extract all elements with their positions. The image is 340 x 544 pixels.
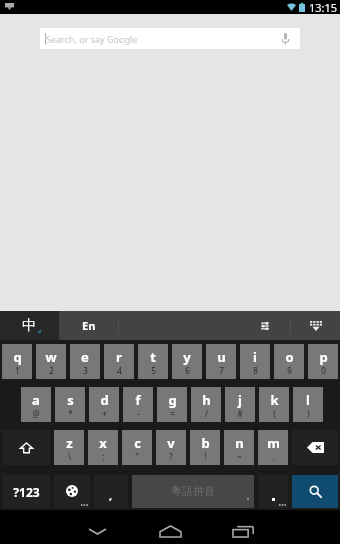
staticText: b bbox=[201, 434, 210, 452]
button[interactable]: Input settings bbox=[240, 311, 290, 340]
button[interactable]: ?123 bbox=[2, 475, 50, 508]
staticText: o bbox=[285, 348, 294, 366]
staticText: 8 bbox=[253, 365, 258, 376]
button[interactable]: r bbox=[104, 344, 134, 379]
button[interactable]: x bbox=[88, 430, 118, 465]
staticText: : bbox=[102, 451, 105, 462]
button[interactable]: q bbox=[2, 344, 32, 379]
staticText: i bbox=[253, 348, 257, 366]
other: Voice search bbox=[281, 32, 290, 45]
staticText: " bbox=[135, 451, 139, 462]
staticText: d bbox=[100, 391, 109, 409]
staticText: k bbox=[270, 391, 279, 409]
staticText: 6 bbox=[185, 365, 190, 376]
button[interactable]: t bbox=[138, 344, 168, 379]
button[interactable]: f bbox=[123, 387, 153, 422]
staticText: x bbox=[99, 434, 107, 452]
staticText: 粵語拼音 bbox=[171, 484, 215, 498]
button[interactable]: e bbox=[70, 344, 100, 379]
button[interactable]: p bbox=[308, 344, 338, 379]
staticText: f bbox=[135, 391, 141, 409]
button[interactable] bbox=[54, 475, 90, 508]
staticText: ! bbox=[204, 451, 207, 462]
staticText: v bbox=[167, 434, 175, 452]
staticText: l bbox=[306, 391, 310, 409]
staticText: , bbox=[109, 488, 113, 503]
staticText: 7 bbox=[219, 365, 224, 376]
button[interactable]: h bbox=[191, 387, 221, 422]
button[interactable] bbox=[2, 430, 50, 465]
staticText: # bbox=[237, 408, 243, 419]
staticText: y bbox=[183, 348, 191, 366]
staticText: ?123 bbox=[13, 484, 40, 500]
button[interactable]: k bbox=[259, 387, 289, 422]
staticText: - bbox=[137, 408, 140, 419]
button[interactable]: Recent apps bbox=[219, 523, 267, 539]
staticText: r bbox=[116, 348, 122, 366]
button[interactable]: Home bbox=[146, 523, 194, 539]
staticText: / bbox=[205, 408, 208, 419]
button[interactable]: m bbox=[258, 430, 288, 465]
staticText: n bbox=[235, 434, 244, 452]
staticText: = bbox=[170, 408, 175, 419]
staticText: 中 bbox=[22, 317, 36, 335]
button[interactable]: Search, or say Google bbox=[40, 28, 300, 49]
staticText: p bbox=[319, 348, 328, 366]
button[interactable]: d bbox=[89, 387, 119, 422]
staticText: c bbox=[134, 434, 141, 452]
staticText: 4 bbox=[117, 365, 122, 376]
button[interactable]: 粵語拼音 bbox=[132, 475, 254, 508]
button[interactable]: 中 bbox=[0, 311, 59, 340]
button[interactable]: Back bbox=[73, 523, 121, 539]
button[interactable]: l bbox=[293, 387, 323, 422]
staticText: e bbox=[81, 348, 89, 366]
button[interactable]: b bbox=[190, 430, 220, 465]
staticText: ) bbox=[307, 408, 310, 419]
button[interactable]: a bbox=[21, 387, 51, 422]
staticText: g bbox=[168, 391, 177, 409]
staticText: m bbox=[267, 434, 280, 452]
button[interactable]: n bbox=[224, 430, 254, 465]
button[interactable]: g bbox=[157, 387, 187, 422]
button[interactable]: i bbox=[240, 344, 270, 379]
staticText: 5 bbox=[151, 365, 156, 376]
staticText: ? bbox=[169, 451, 173, 462]
button[interactable]: , bbox=[94, 475, 128, 508]
staticText: 1 bbox=[15, 365, 20, 376]
button[interactable]: v bbox=[156, 430, 186, 465]
button[interactable]: c bbox=[122, 430, 152, 465]
button[interactable]: s bbox=[55, 387, 85, 422]
staticText: ~ bbox=[237, 451, 242, 462]
button[interactable] bbox=[258, 475, 288, 508]
staticText: . bbox=[272, 451, 275, 462]
button[interactable]: j bbox=[225, 387, 255, 422]
staticText: a bbox=[32, 391, 40, 409]
staticText: * bbox=[68, 408, 73, 419]
button[interactable]: Hide keyboard bbox=[291, 311, 340, 340]
staticText: j bbox=[238, 391, 242, 409]
button[interactable]: o bbox=[274, 344, 304, 379]
staticText: q bbox=[13, 348, 22, 366]
button[interactable]: u bbox=[206, 344, 236, 379]
staticText: 0 bbox=[321, 365, 326, 376]
staticText: + bbox=[102, 408, 107, 419]
staticText: ( bbox=[273, 408, 276, 419]
staticText: 9 bbox=[287, 365, 292, 376]
staticText: z bbox=[66, 434, 73, 452]
button[interactable]: w bbox=[36, 344, 66, 379]
staticText: En bbox=[82, 318, 96, 333]
button[interactable]: y bbox=[172, 344, 202, 379]
staticText: t bbox=[150, 348, 156, 366]
button[interactable]: En bbox=[59, 311, 118, 340]
staticText: \ bbox=[68, 451, 71, 462]
staticText: 3 bbox=[83, 365, 88, 376]
button[interactable]: z bbox=[54, 430, 84, 465]
staticText: s bbox=[67, 391, 74, 409]
staticText: u bbox=[217, 348, 226, 366]
staticText: Search, or say Google bbox=[46, 33, 138, 45]
staticText: @ bbox=[32, 408, 40, 419]
staticText: w bbox=[45, 348, 57, 366]
staticText: 13:15 bbox=[309, 0, 338, 14]
button[interactable] bbox=[292, 430, 338, 465]
button[interactable] bbox=[292, 475, 338, 508]
